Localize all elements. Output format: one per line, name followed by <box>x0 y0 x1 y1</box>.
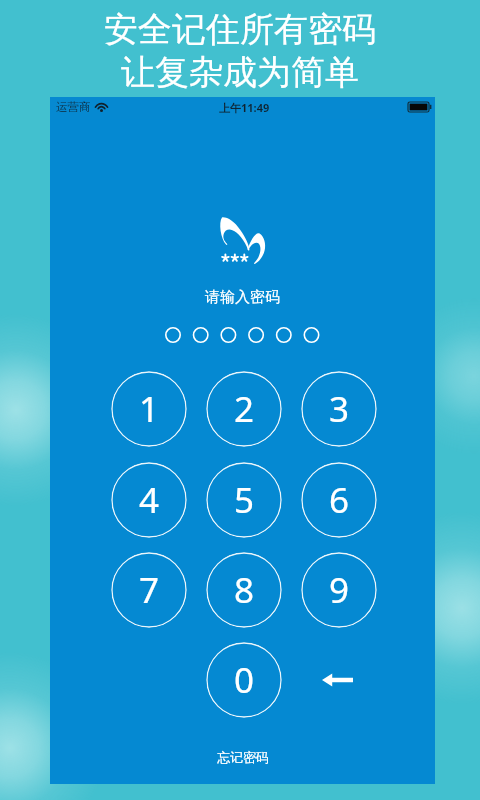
staticText: 4 <box>139 476 160 524</box>
button[interactable]: 2 <box>206 371 282 447</box>
staticText: 上午11:49 <box>219 100 270 115</box>
button[interactable]: 9 <box>301 552 377 628</box>
staticText: 5 <box>234 476 255 524</box>
staticText: 0 <box>234 656 255 704</box>
staticText: 运营商 <box>56 100 91 114</box>
button[interactable]: Backspace <box>307 650 367 710</box>
staticText: 7 <box>139 566 160 614</box>
staticText: 2 <box>234 385 255 433</box>
staticText: 6 <box>329 476 350 524</box>
staticText: 3 <box>329 385 350 433</box>
staticText: 9 <box>329 566 350 614</box>
button[interactable]: 8 <box>206 552 282 628</box>
button[interactable]: 3 <box>301 371 377 447</box>
staticText: 8 <box>234 566 255 614</box>
button[interactable]: 6 <box>301 462 377 538</box>
button[interactable]: 4 <box>111 462 187 538</box>
staticText: 1 <box>139 385 160 433</box>
button[interactable]: 0 <box>206 642 282 718</box>
staticText: 请输入密码 <box>205 288 280 307</box>
button[interactable]: 7 <box>111 552 187 628</box>
button[interactable]: 5 <box>206 462 282 538</box>
button[interactable]: 忘记密码 <box>207 745 279 769</box>
staticText: 让复杂成为简单 <box>121 51 359 94</box>
staticText: 安全记住所有密码 <box>104 8 376 51</box>
staticText: 忘记密码 <box>217 749 269 765</box>
button[interactable]: 1 <box>111 371 187 447</box>
